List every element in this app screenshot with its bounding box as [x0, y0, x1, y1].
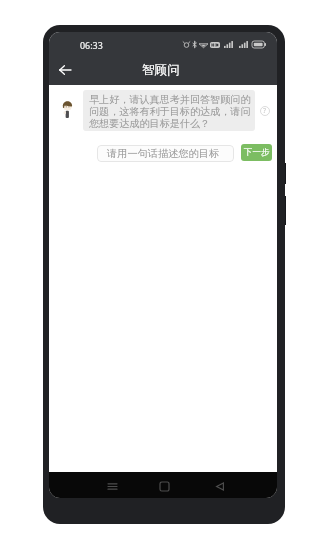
button[interactable]: Back	[209, 475, 231, 497]
button[interactable]: Home	[153, 475, 175, 497]
button[interactable]: Help	[260, 106, 270, 116]
staticText: 下一步	[244, 147, 270, 158]
staticText: 智顾问	[142, 62, 180, 78]
button[interactable]: 请用一句话描述您的目标	[97, 145, 234, 162]
staticText: 请用一句话描述您的目标	[107, 147, 220, 160]
button[interactable]: 早上好，请认真思考并回答智顾问的问题，这将有利于目标的达成，请问您想要达成的目标…	[83, 90, 255, 131]
staticText: ?	[263, 106, 267, 116]
button[interactable]: Recent apps	[101, 475, 123, 497]
staticText: 06:33	[80, 39, 103, 51]
button[interactable]: Back	[53, 58, 77, 82]
button[interactable]: 下一步	[241, 144, 272, 161]
staticText: 早上好，请认真思考并回答智顾问的问题，这将有利于目标的达成，请问您想要达成的目标…	[89, 93, 253, 130]
